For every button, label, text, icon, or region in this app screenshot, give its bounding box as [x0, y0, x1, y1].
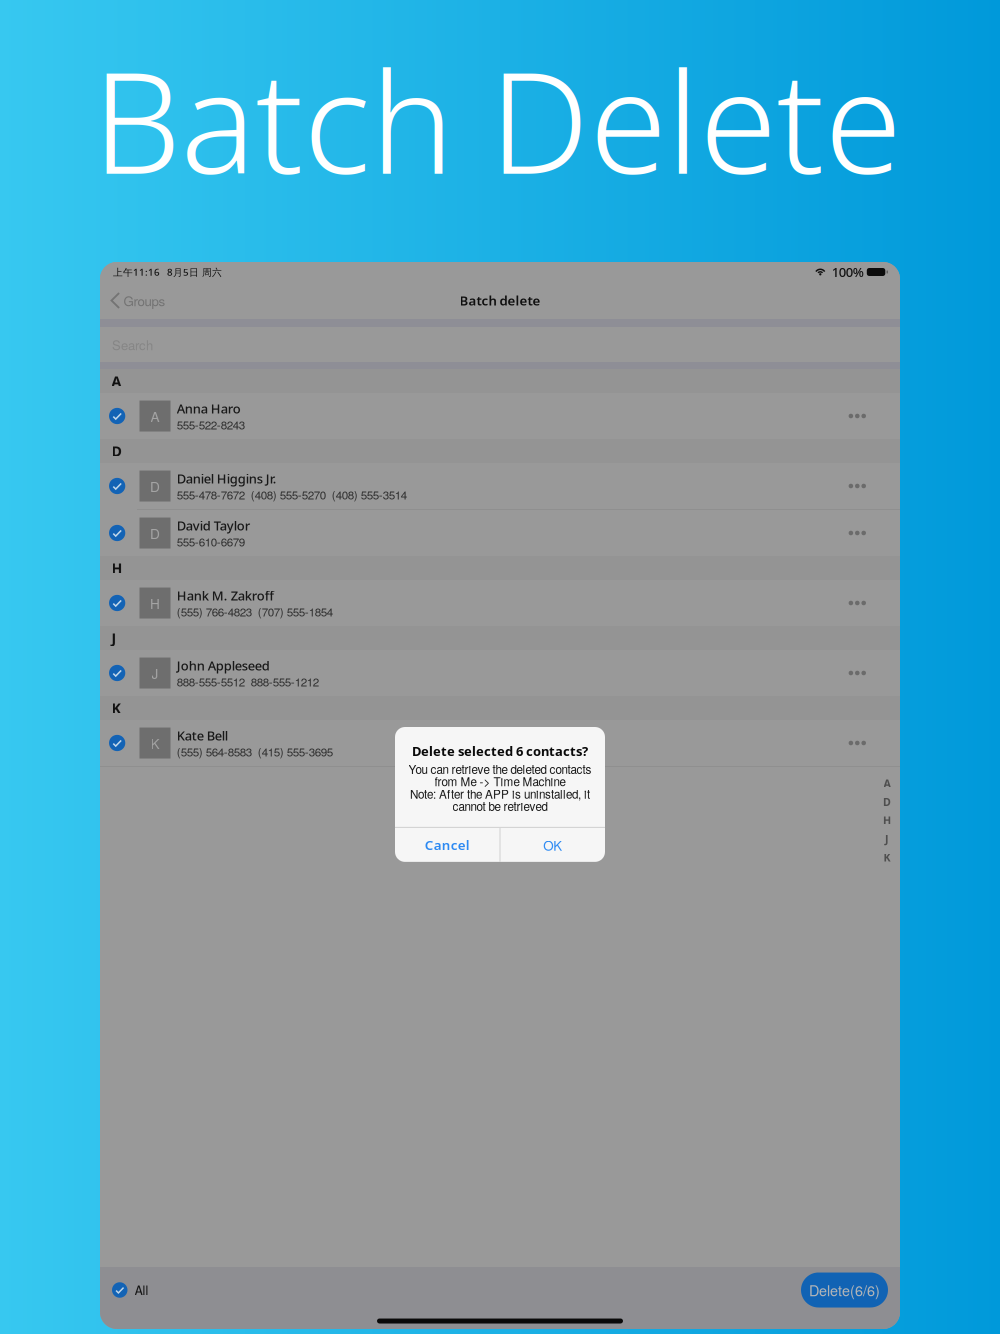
staticText: J — [151, 663, 158, 683]
staticText: (555) 564-8583 (415) 555-3695 — [177, 743, 333, 760]
staticText: H — [150, 593, 160, 613]
staticText: Batch Delete — [92, 24, 901, 215]
staticText: Delete selected 6 contacts? — [412, 742, 588, 760]
staticText: Batch delete — [459, 291, 540, 309]
button[interactable]: All — [100, 1273, 148, 1307]
button[interactable]: H — [100, 580, 900, 626]
staticText: J — [885, 832, 889, 846]
staticText: 555-610-6679 — [177, 533, 245, 550]
button[interactable]: J — [100, 650, 900, 696]
staticText: Groups — [124, 291, 166, 310]
staticText: cannot be retrieved — [452, 797, 547, 814]
staticText: J — [111, 628, 116, 648]
button[interactable]: J — [885, 832, 889, 846]
button[interactable]: D — [883, 794, 891, 809]
staticText: Daniel Higgins Jr. — [177, 470, 277, 487]
staticText: D — [111, 441, 121, 461]
button[interactable]: Groups — [100, 286, 166, 315]
staticText: 上午11:16 — [113, 265, 160, 279]
staticText: David Taylor — [177, 517, 250, 534]
button[interactable]: K — [883, 850, 890, 865]
staticText: All — [134, 1281, 148, 1299]
staticText: A — [150, 406, 159, 426]
staticText: K — [111, 698, 120, 718]
button[interactable]: OK — [500, 828, 605, 862]
staticText: Anna Haro — [177, 400, 241, 417]
button[interactable]: D — [100, 510, 900, 556]
button[interactable]: K — [100, 720, 900, 766]
button[interactable]: Delete(6/6) — [801, 1272, 888, 1307]
staticText: Kate Bell — [177, 727, 228, 744]
staticText: 8月5日 周六 — [167, 265, 222, 279]
staticText: D — [150, 476, 160, 496]
button[interactable]: H — [883, 813, 891, 828]
staticText: 555-522-8243 — [177, 416, 245, 433]
staticText: from Me -> Time Machine — [434, 773, 565, 790]
button[interactable]: D — [100, 463, 900, 510]
staticText: 555-478-7672 (408) 555-5270 (408) 555-35… — [177, 486, 407, 503]
staticText: 888-555-5512 888-555-1212 — [177, 673, 319, 690]
staticText: (555) 766-4823 (707) 555-1854 — [177, 603, 333, 620]
staticText: Cancel — [425, 836, 470, 854]
staticText: You can retrieve the deleted contacts — [408, 761, 591, 777]
staticText: Delete(6/6) — [809, 1280, 880, 1300]
staticText: H — [111, 558, 122, 578]
staticText: 100% — [832, 263, 864, 281]
staticText: K — [150, 733, 159, 753]
staticText: A — [883, 776, 890, 790]
staticText: D — [883, 794, 891, 809]
staticText: D — [150, 523, 160, 543]
staticText: John Appleseed — [177, 657, 270, 674]
button[interactable]: Cancel — [395, 828, 499, 862]
staticText: A — [111, 371, 121, 391]
staticText: Search — [112, 335, 153, 354]
staticText: Note: After the APP is uninstalled, it — [410, 785, 590, 802]
staticText: OK — [543, 835, 562, 854]
staticText: Hank M. Zakroff — [177, 587, 274, 604]
button[interactable]: A — [100, 393, 900, 439]
button[interactable]: A — [883, 776, 890, 790]
staticText: K — [883, 850, 890, 865]
staticText: H — [883, 813, 891, 828]
